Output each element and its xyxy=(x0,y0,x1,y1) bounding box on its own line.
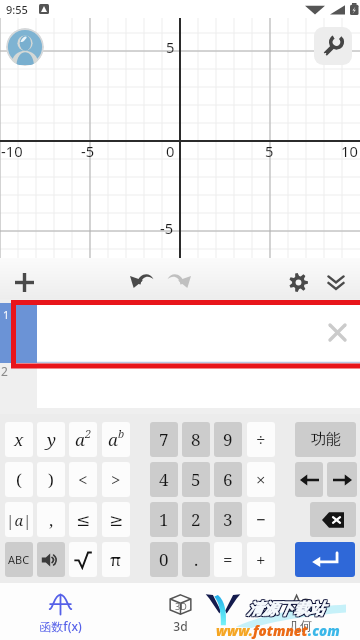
button[interactable]: Clear expression xyxy=(328,323,347,342)
button[interactable]: 9 xyxy=(214,422,242,457)
button[interactable]: Settings xyxy=(280,264,316,300)
button[interactable]: Redo xyxy=(161,260,197,296)
staticText: − xyxy=(256,508,266,531)
button[interactable]: π xyxy=(102,542,130,577)
staticText: -5 xyxy=(160,218,174,238)
button[interactable]: ABC xyxy=(5,542,33,577)
staticText: -5 xyxy=(81,141,95,161)
staticText: 4 xyxy=(159,468,169,491)
staticText: ) xyxy=(48,468,54,491)
staticText: π xyxy=(110,548,122,571)
button[interactable]: + xyxy=(247,542,275,577)
staticText: x xyxy=(14,428,24,451)
staticText: 清源下载站 xyxy=(247,598,325,618)
staticText: = xyxy=(223,548,233,571)
staticText: 清源下载站 xyxy=(248,599,326,619)
button[interactable]: 8 xyxy=(182,422,210,457)
button[interactable]: x xyxy=(5,422,33,457)
button[interactable]: 7 xyxy=(150,422,178,457)
button[interactable]: ) xyxy=(37,462,65,497)
staticText: .com xyxy=(308,622,340,640)
button[interactable]: 5 xyxy=(182,462,210,497)
button[interactable]: ≤ xyxy=(69,502,97,537)
staticText: ≥ xyxy=(109,510,124,530)
button[interactable]: ENTER xyxy=(295,542,355,577)
button[interactable]: DEL xyxy=(310,502,356,537)
button[interactable]: 函数f(x) xyxy=(0,583,120,640)
staticText: + xyxy=(256,548,266,571)
staticText: ABC xyxy=(8,552,30,567)
staticText: -10 xyxy=(1,141,23,161)
button[interactable]: 2 xyxy=(182,502,210,537)
button[interactable]: 功能 xyxy=(295,422,356,457)
staticText: 5 xyxy=(191,468,201,491)
staticText: ≤ xyxy=(76,510,91,530)
staticText: |a| xyxy=(6,510,32,530)
button[interactable]: ( xyxy=(5,462,33,497)
button[interactable]: SPK xyxy=(37,542,65,577)
button[interactable]: |a| xyxy=(5,502,33,537)
staticText: 2 xyxy=(191,508,201,531)
staticText: 5 xyxy=(265,141,274,161)
button[interactable]: − xyxy=(247,502,275,537)
button[interactable]: Account xyxy=(6,28,44,66)
staticText: 9 xyxy=(223,428,233,451)
button[interactable]: 1 xyxy=(150,502,178,537)
button[interactable]: × xyxy=(247,462,275,497)
staticText: 清源下载站 xyxy=(248,598,326,618)
button[interactable]: Undo xyxy=(123,260,159,296)
button[interactable]: a2 xyxy=(69,422,97,457)
staticText: 2 xyxy=(85,426,92,441)
staticText: < xyxy=(78,468,88,491)
button[interactable]: . xyxy=(182,542,210,577)
staticText: 函数f(x) xyxy=(39,618,82,634)
staticText: , xyxy=(49,508,54,531)
staticText: 3d xyxy=(173,618,188,634)
staticText: 清源下载站 xyxy=(246,600,324,620)
button[interactable]: Collapse keyboard xyxy=(318,264,354,300)
staticText: 3D xyxy=(175,600,187,612)
staticText: 几何 xyxy=(288,618,312,633)
staticText: 9:55 xyxy=(6,2,28,17)
staticText: y xyxy=(47,428,56,451)
staticText: 3 xyxy=(223,508,233,531)
staticText: a xyxy=(75,428,85,451)
button[interactable]: ≥ xyxy=(102,502,130,537)
button[interactable]: 4 xyxy=(150,462,178,497)
staticText: a xyxy=(108,428,118,451)
staticText: 1 xyxy=(3,307,10,322)
staticText: ( xyxy=(16,468,22,491)
staticText: 清源下载站 xyxy=(248,600,326,620)
button[interactable]: 3 xyxy=(214,502,242,537)
staticText: 2 xyxy=(1,363,8,379)
button[interactable]: = xyxy=(214,542,242,577)
button[interactable]: > xyxy=(102,462,130,497)
staticText: > xyxy=(111,468,121,491)
button[interactable]: 0 xyxy=(150,542,178,577)
button[interactable]: ← xyxy=(295,462,323,497)
staticText: . xyxy=(194,548,199,571)
staticText: www. xyxy=(216,622,253,640)
button[interactable]: Add expression xyxy=(6,264,42,300)
button[interactable]: SQRT xyxy=(69,542,97,577)
button[interactable]: 3D xyxy=(120,583,240,640)
button[interactable]: < xyxy=(69,462,97,497)
staticText: 清源下载站 xyxy=(247,600,325,620)
staticText: 10 xyxy=(341,141,358,161)
staticText: 清源下载站 xyxy=(247,599,325,619)
staticText: 8 xyxy=(191,428,201,451)
button[interactable]: → xyxy=(327,462,357,497)
staticText: fotmnet xyxy=(253,622,308,640)
staticText: × xyxy=(256,468,266,491)
button[interactable]: , xyxy=(37,502,65,537)
button[interactable]: 1 xyxy=(0,303,360,363)
button[interactable]: y xyxy=(37,422,65,457)
staticText: 0 xyxy=(166,141,175,161)
button[interactable]: ÷ xyxy=(247,422,275,457)
button[interactable]: 几何 xyxy=(240,583,360,640)
button[interactable]: Tools xyxy=(314,27,352,65)
button[interactable]: 6 xyxy=(214,462,242,497)
button[interactable]: ab xyxy=(102,422,130,457)
staticText: 0 xyxy=(159,548,169,571)
button[interactable]: 2 xyxy=(0,364,360,408)
